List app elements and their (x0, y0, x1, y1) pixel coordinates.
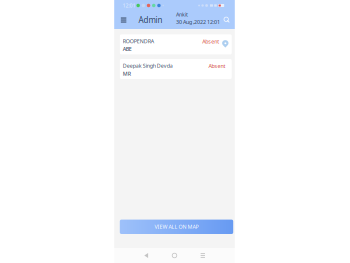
button[interactable]: Recents (197, 248, 209, 263)
button[interactable]: VIEW ALL ON MAP (120, 220, 233, 234)
staticText: VIEW ALL ON MAP (154, 223, 198, 230)
staticText: Ankit (176, 11, 188, 18)
staticText: MR (123, 70, 131, 77)
staticText: ABE (123, 45, 132, 53)
staticText: Deepak Singh Devda (123, 62, 173, 69)
staticText: Admin (138, 15, 162, 25)
staticText: Absent (208, 62, 225, 69)
staticText: 12:01 (122, 2, 135, 9)
button[interactable]: Deepak Singh Devda (120, 59, 232, 79)
button[interactable]: Menu (121, 11, 127, 29)
button[interactable]: Back (140, 248, 152, 263)
staticText: 30 Aug ,2022 12:01 (176, 18, 220, 26)
staticText: ROOPENDRA (123, 38, 154, 45)
button[interactable]: ROOPENDRA (120, 34, 232, 54)
button[interactable]: Search (223, 11, 230, 29)
button[interactable]: Home (168, 248, 180, 263)
staticText: Absent (202, 38, 219, 45)
